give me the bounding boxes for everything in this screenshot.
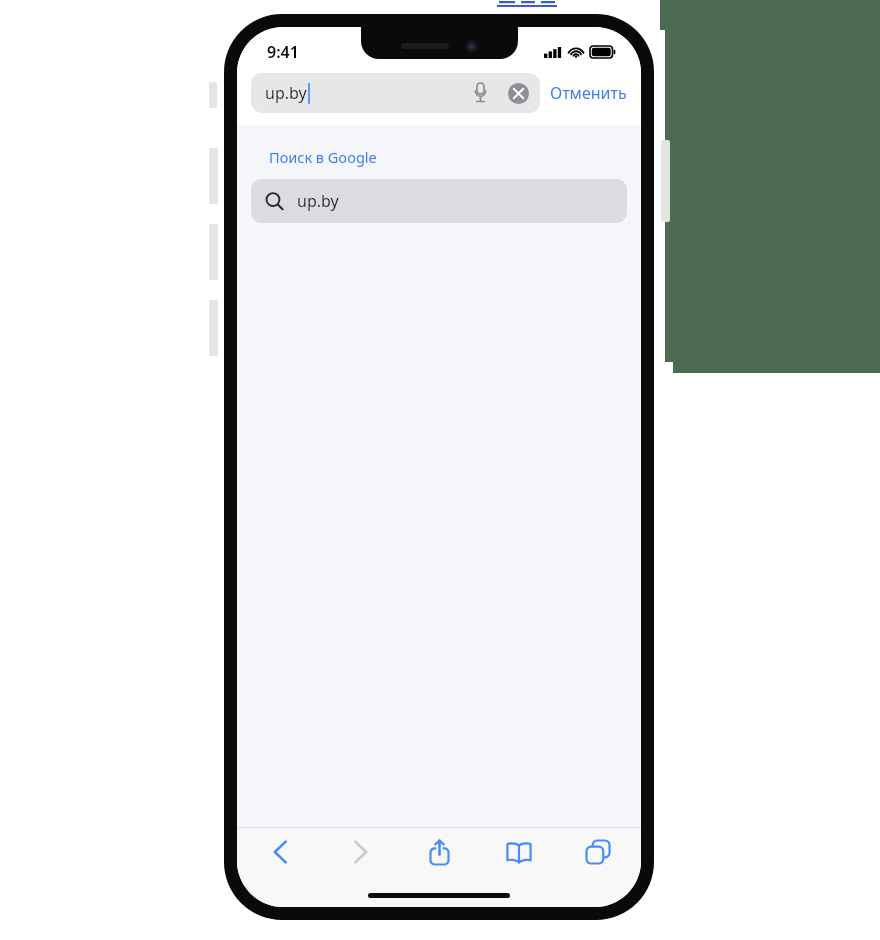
- button[interactable]: Back: [253, 828, 307, 876]
- staticText: up.by: [297, 190, 339, 212]
- button[interactable]: up.by: [251, 73, 540, 113]
- button[interactable]: Clear text: [501, 76, 535, 110]
- button[interactable]: Voice search: [463, 76, 497, 110]
- staticText: 9:41: [267, 41, 299, 63]
- button[interactable]: Отменить: [540, 76, 629, 110]
- button[interactable]: Share: [412, 828, 466, 876]
- button[interactable]: Bookmarks: [492, 828, 546, 876]
- button[interactable]: Tabs: [571, 828, 625, 876]
- staticText: Отменить: [550, 82, 627, 104]
- staticText: Поиск в Google: [269, 147, 377, 167]
- staticText: up.by: [265, 82, 307, 104]
- button[interactable]: Forward: [333, 828, 387, 876]
- button[interactable]: up.by: [251, 179, 627, 223]
